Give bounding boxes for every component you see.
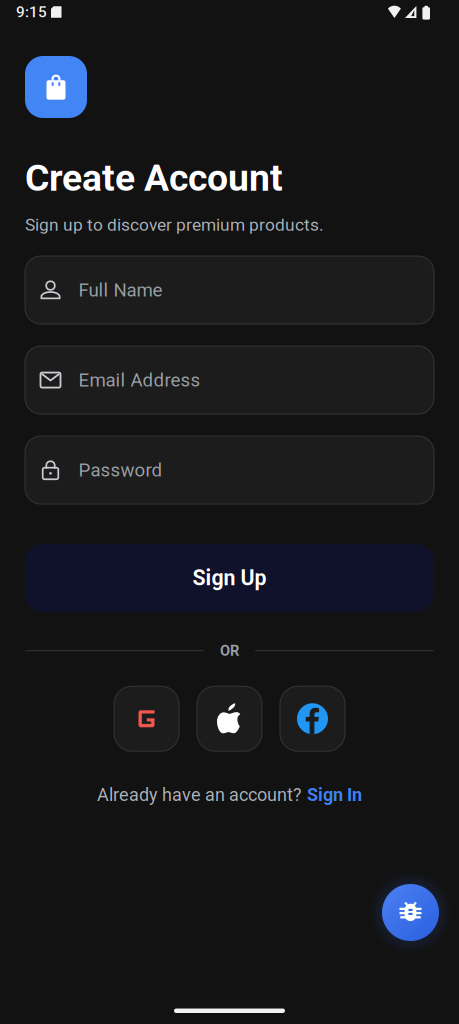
staticText: Sign Up bbox=[192, 566, 266, 591]
staticText: Sign up to discover premium products. bbox=[25, 215, 324, 235]
button[interactable]: Debug bbox=[369, 871, 451, 953]
staticText: Create Account bbox=[25, 156, 283, 200]
button[interactable]: Sign up with Apple bbox=[197, 686, 262, 751]
staticText: Email Address bbox=[78, 369, 200, 391]
button[interactable]: Email Address bbox=[25, 346, 434, 414]
staticText: Password bbox=[78, 459, 162, 481]
staticText: Already have an account? bbox=[97, 784, 302, 805]
button[interactable]: Sign up with Google bbox=[114, 686, 179, 751]
staticText: Sign In bbox=[307, 784, 362, 805]
button[interactable]: Already have an account? bbox=[97, 778, 362, 811]
staticText: OR bbox=[220, 642, 239, 659]
button[interactable]: Password bbox=[25, 436, 434, 504]
button[interactable]: Sign Up bbox=[25, 544, 434, 612]
button[interactable]: Sign up with Facebook bbox=[280, 686, 345, 751]
staticText: Full Name bbox=[78, 279, 162, 301]
button[interactable]: Full Name bbox=[25, 256, 434, 324]
staticText: 9:15 bbox=[16, 3, 47, 21]
